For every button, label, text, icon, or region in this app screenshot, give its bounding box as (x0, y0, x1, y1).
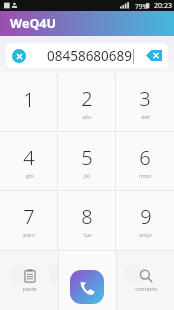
staticText: wxyz (139, 231, 152, 238)
staticText: 7 (23, 203, 35, 230)
staticText: paste (22, 285, 37, 292)
button[interactable]: 7 (0, 191, 58, 250)
staticText: 9 (140, 203, 152, 230)
staticText: 1 (23, 86, 35, 113)
button[interactable]: 0 (59, 251, 116, 310)
staticText: 20:23 (154, 1, 172, 11)
staticText: 2 (81, 85, 93, 112)
button[interactable]: 9 (116, 191, 174, 250)
staticText: jkl (84, 172, 90, 179)
staticText: def (141, 113, 150, 120)
button[interactable]: 6 (116, 132, 174, 190)
staticText: pqrs (23, 231, 35, 238)
button[interactable]: Call (70, 270, 104, 304)
staticText: tuv (83, 231, 92, 238)
staticText: contacts (135, 285, 157, 292)
staticText: 0 (82, 264, 94, 291)
button[interactable]: 4 (0, 132, 58, 190)
button[interactable]: Backspace (146, 50, 162, 61)
staticText: 6 (139, 144, 151, 171)
staticText: 8 (81, 203, 93, 230)
staticText: ghi (25, 172, 34, 179)
staticText: abc (82, 113, 92, 120)
staticText: 79% (135, 2, 148, 11)
staticText: mno (139, 172, 151, 179)
staticText: 3 (139, 85, 151, 112)
button[interactable]: 1 (0, 73, 58, 131)
button[interactable]: paste (0, 251, 58, 310)
button[interactable]: 5 (58, 132, 116, 190)
staticText: 4 (23, 144, 35, 171)
button[interactable]: 3 (116, 73, 174, 131)
button[interactable]: 2 (58, 73, 116, 131)
button[interactable]: contacts (117, 251, 174, 310)
button[interactable]: 8 (58, 191, 116, 250)
staticText: 5 (81, 144, 93, 171)
button[interactable]: Clear (12, 49, 26, 63)
staticText: 08458680689 (47, 47, 132, 65)
staticText: WeQ4U (10, 15, 56, 32)
